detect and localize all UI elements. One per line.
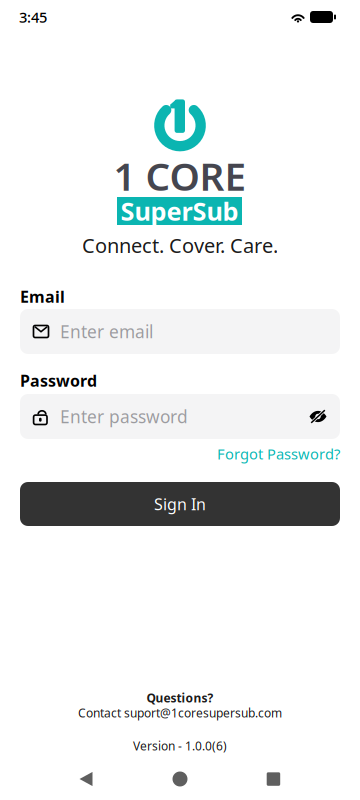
button[interactable]: Back	[65, 757, 107, 800]
staticText: Enter password	[60, 405, 188, 428]
staticText: 1 CORE	[113, 150, 246, 201]
button[interactable]: Recent apps	[253, 758, 294, 800]
staticText: Sign In	[154, 493, 206, 515]
staticText: Forgot Password?	[217, 444, 340, 463]
staticText: Questions?	[146, 690, 213, 706]
button[interactable]: Sign In	[20, 482, 340, 526]
staticText: Contact suport@1coresupersub.com	[78, 705, 282, 721]
button[interactable]: Show password	[309, 408, 327, 425]
button[interactable]: Forgot Password?	[20, 444, 340, 463]
staticText: Password	[20, 370, 97, 391]
staticText: Version - 1.0.0(6)	[133, 738, 227, 754]
staticText: 3:45	[19, 7, 47, 27]
staticText: Enter email	[60, 320, 153, 343]
staticText: Email	[20, 286, 65, 307]
button[interactable]: Home	[158, 757, 201, 800]
staticText: Connect. Cover. Care.	[82, 232, 278, 259]
staticText: SuperSub	[120, 194, 238, 228]
